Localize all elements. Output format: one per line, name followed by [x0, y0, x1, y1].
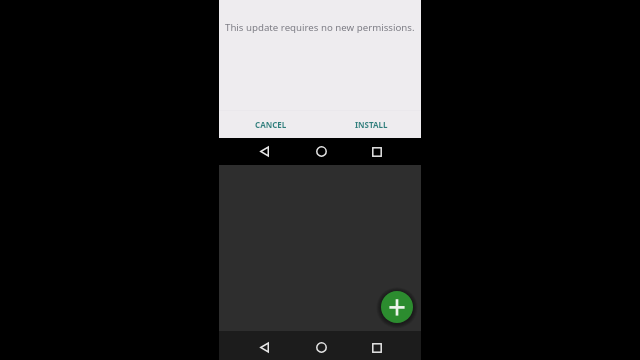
button[interactable]: Recent apps [365, 333, 389, 360]
staticText: This update requires no new permissions. [225, 21, 415, 34]
button[interactable]: Recent apps [365, 138, 389, 165]
button[interactable]: INSTALL [349, 114, 394, 135]
button[interactable]: Home [309, 138, 333, 165]
button[interactable]: Home [309, 333, 333, 360]
button[interactable]: Back [252, 333, 276, 360]
button[interactable]: Add [381, 291, 413, 323]
button[interactable]: CANCEL [249, 114, 293, 135]
staticText: INSTALL [355, 119, 388, 130]
button[interactable]: Back [252, 138, 276, 165]
staticText: CANCEL [255, 119, 287, 130]
